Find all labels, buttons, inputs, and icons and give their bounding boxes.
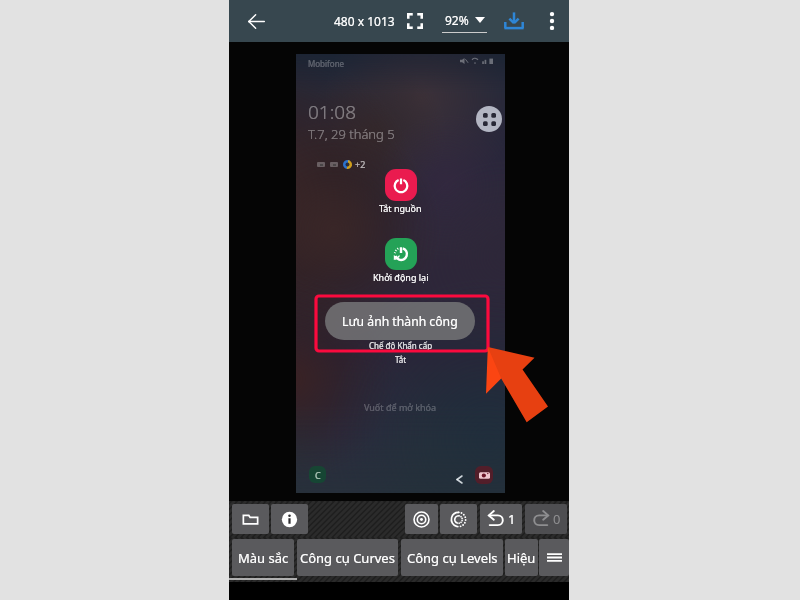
button[interactable]: Camera (475, 466, 493, 484)
staticText: Công cụ Levels (407, 549, 498, 567)
staticText: 0 (553, 510, 561, 528)
staticText: Công cụ Curves (300, 549, 395, 567)
staticText: 1 (508, 510, 516, 528)
button[interactable]: Power off (385, 169, 417, 201)
button[interactable]: Save (495, 0, 533, 42)
staticText: Mobifone (308, 58, 345, 69)
button[interactable]: Menu (539, 539, 569, 576)
staticText: T.7, 29 tháng 5 (308, 125, 395, 143)
button[interactable]: Phone (309, 466, 326, 483)
staticText: Vuốt để mở khóa (364, 401, 437, 413)
button[interactable]: Open (232, 504, 269, 534)
button[interactable]: Restart (385, 238, 417, 270)
staticText: +2 (355, 158, 366, 170)
button[interactable]: More options (536, 0, 568, 42)
button[interactable]: Info (271, 504, 308, 534)
button[interactable]: Back (237, 0, 275, 42)
button[interactable]: Feather selection (440, 504, 477, 534)
button[interactable]: Công cụ Levels (401, 539, 503, 576)
staticText: Tắt nguồn (379, 202, 422, 214)
button[interactable]: Công cụ Curves (297, 539, 398, 576)
staticText: Lưu ảnh thành công (342, 313, 458, 330)
staticText: Khởi động lại (373, 271, 429, 283)
button[interactable]: Undo (480, 504, 522, 534)
staticText: Tắt (395, 354, 407, 365)
button[interactable]: Hiệu ứng (505, 539, 538, 576)
button[interactable]: Redo (525, 504, 567, 534)
button[interactable]: 92% (437, 0, 491, 42)
staticText: 480 x 1013 (334, 13, 395, 29)
staticText: C (315, 469, 321, 481)
button[interactable]: Selection (405, 504, 438, 534)
button[interactable]: Màu sắc (232, 539, 294, 576)
staticText: 01:08 (308, 99, 357, 125)
staticText: Màu sắc (238, 549, 289, 567)
staticText: Hiệu ứng (507, 549, 538, 567)
staticText: 92% (445, 12, 469, 28)
staticText: Chế độ Khẩn cấp (369, 340, 433, 351)
button[interactable]: Apps (476, 106, 502, 132)
button[interactable]: Fit to screen (400, 0, 430, 42)
